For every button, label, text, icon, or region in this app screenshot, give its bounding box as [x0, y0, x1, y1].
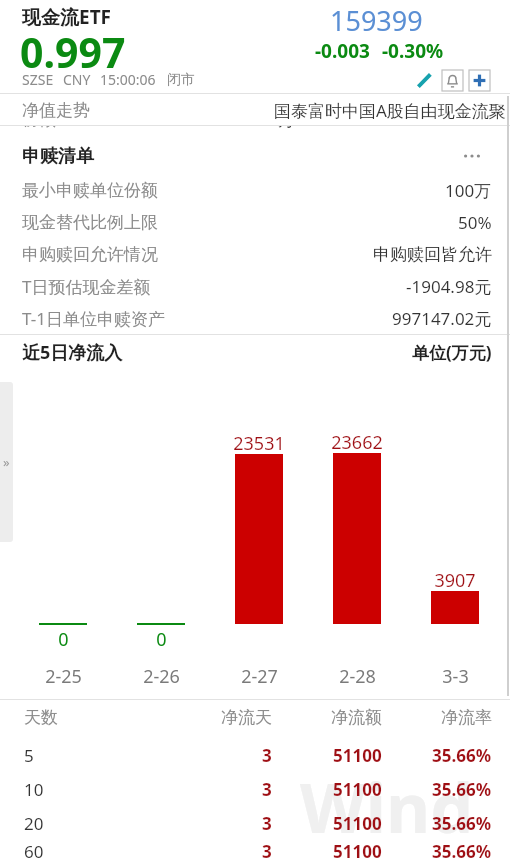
- button[interactable]: 天数: [0, 700, 510, 734]
- staticText: SZSE: [22, 70, 54, 89]
- button[interactable]: 申购赎回允许情况: [0, 238, 510, 270]
- staticText: 2-28: [339, 664, 376, 689]
- button[interactable]: 近5日净流入: [0, 335, 510, 369]
- staticText: 6500万: [239, 108, 295, 131]
- staticText: 净流率: [441, 707, 492, 728]
- staticText: CNY: [63, 70, 91, 89]
- staticText: 份额: [22, 109, 56, 130]
- staticText: 35.66%: [432, 840, 492, 858]
- staticText: 35.66%: [432, 744, 492, 767]
- staticText: -1904.98元: [406, 275, 492, 298]
- staticText: -0.30%: [382, 38, 444, 64]
- staticText: »: [3, 453, 10, 471]
- staticText: 51100: [333, 778, 382, 801]
- staticText: 0.997: [20, 24, 126, 80]
- staticText: 2-25: [45, 664, 82, 689]
- button[interactable]: 5: [0, 738, 510, 772]
- button[interactable]: 10: [0, 772, 510, 806]
- staticText: 100万: [445, 179, 492, 202]
- button[interactable]: 20: [0, 806, 510, 840]
- staticText: 天数: [24, 707, 58, 728]
- staticText: 净值走势: [22, 100, 90, 121]
- button[interactable]: 60: [0, 840, 510, 858]
- staticText: 0: [58, 627, 69, 652]
- button[interactable]: T日预估现金差额: [0, 270, 510, 302]
- button[interactable]: Add to watchlist: [469, 70, 490, 91]
- staticText: 60: [24, 840, 44, 858]
- staticText: 申购赎回皆允许: [373, 244, 492, 265]
- staticText: 国泰富时中国A股自由现金流聚: [274, 99, 506, 122]
- staticText: 3907: [434, 568, 476, 593]
- staticText: 0: [478, 108, 488, 131]
- button[interactable]: T-1日单位申赎资产: [0, 302, 510, 334]
- staticText: 3: [262, 744, 272, 767]
- button[interactable]: Alerts: [442, 70, 463, 91]
- staticText: 2-26: [143, 664, 180, 689]
- staticText: 2-27: [241, 664, 278, 689]
- staticText: 51100: [333, 744, 382, 767]
- staticText: 50%: [458, 211, 492, 234]
- staticText: 最小申赎单位份额: [22, 180, 158, 201]
- staticText: 0: [156, 627, 167, 652]
- staticText: 997147.02元: [392, 307, 492, 330]
- staticText: 单位(万元): [412, 341, 492, 364]
- staticText: 35.66%: [432, 778, 492, 801]
- staticText: T-1日单位申赎资产: [22, 307, 165, 330]
- staticText: 35.66%: [432, 812, 492, 835]
- staticText: 现金替代比例上限: [22, 212, 158, 233]
- staticText: Wind: [300, 760, 474, 853]
- button[interactable]: 净值走势: [0, 94, 510, 126]
- staticText: 15:00:06: [100, 70, 156, 89]
- other: More: [460, 146, 484, 166]
- staticText: 3: [262, 840, 272, 858]
- staticText: 23662: [331, 430, 383, 455]
- staticText: 23531: [233, 431, 285, 456]
- staticText: 3: [262, 812, 272, 835]
- button[interactable]: Expand panel: [0, 382, 13, 542]
- staticText: 申购赎回允许情况: [22, 244, 158, 265]
- staticText: 3-3: [442, 664, 469, 689]
- staticText: 现金流ETF: [22, 4, 112, 30]
- button[interactable]: Edit: [412, 68, 436, 92]
- staticText: 159399: [330, 2, 423, 39]
- staticText: 申赎清单: [22, 145, 94, 168]
- staticText: 闭市: [167, 71, 195, 89]
- staticText: 5: [24, 744, 34, 767]
- button[interactable]: 现金替代比例上限: [0, 206, 510, 238]
- staticText: 近5日净流入: [22, 340, 123, 365]
- staticText: 51100: [333, 812, 382, 835]
- button[interactable]: 最小申赎单位份额: [0, 174, 510, 206]
- staticText: 51100: [333, 840, 382, 858]
- staticText: T日预估现金差额: [22, 275, 151, 298]
- staticText: 3: [262, 778, 272, 801]
- staticText: 10: [24, 778, 44, 801]
- button[interactable]: 申赎清单: [0, 138, 510, 174]
- staticText: 20: [24, 812, 44, 835]
- staticText: 净流额: [331, 707, 382, 728]
- staticText: -0.003: [315, 38, 370, 64]
- staticText: 净流天: [221, 707, 272, 728]
